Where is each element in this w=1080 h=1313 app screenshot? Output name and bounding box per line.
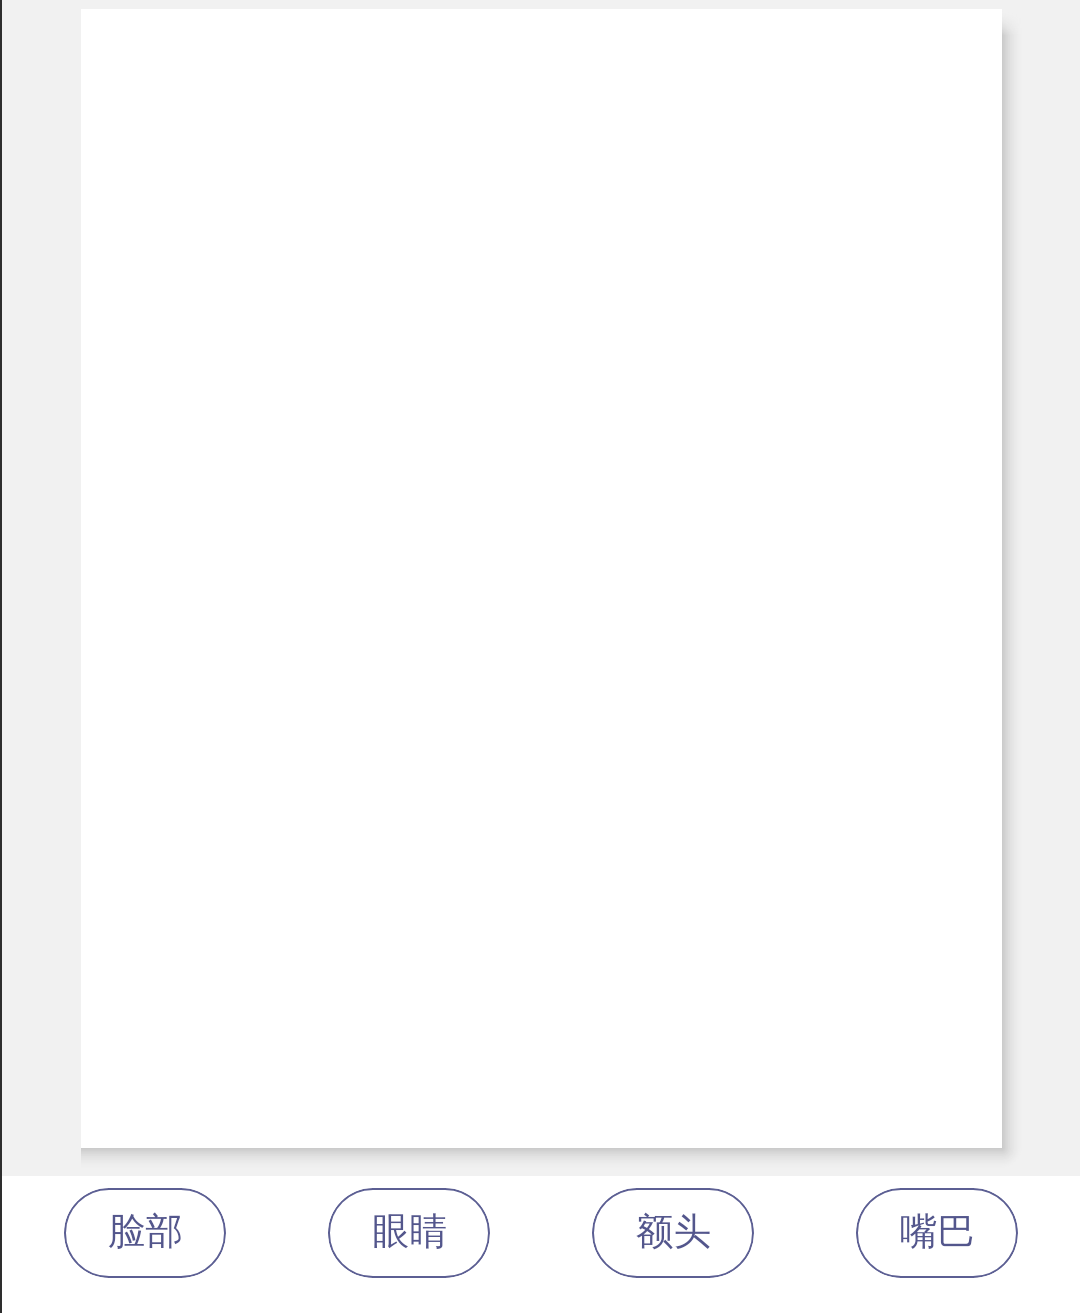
staticText: 额头 (636, 1208, 711, 1255)
button[interactable]: 眼睛 (328, 1188, 490, 1278)
staticText: 眼睛 (372, 1208, 447, 1255)
staticText: 脸部 (108, 1208, 183, 1255)
button[interactable]: 嘴巴 (856, 1188, 1018, 1278)
staticText: 嘴巴 (900, 1208, 975, 1255)
button[interactable]: 额头 (592, 1188, 754, 1278)
button[interactable]: Photo preview (0, 0, 1080, 1176)
button[interactable]: 脸部 (64, 1188, 226, 1278)
